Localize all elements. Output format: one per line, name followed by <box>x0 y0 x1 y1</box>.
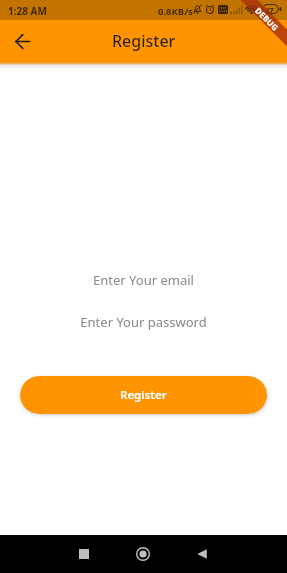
staticText: Register <box>112 30 176 52</box>
staticText: 47 <box>265 5 274 15</box>
staticText: 0.8KB/s <box>158 5 193 18</box>
button[interactable]: Register <box>20 376 267 414</box>
staticText: Register <box>120 387 167 403</box>
staticText: DEBUG <box>253 5 281 33</box>
staticText: Enter Your email <box>93 271 194 289</box>
staticText: Enter Your password <box>80 313 207 331</box>
button[interactable]: Recents <box>54 535 114 573</box>
button[interactable]: Home <box>113 535 173 573</box>
button[interactable]: Back <box>172 535 232 573</box>
staticText: 1:28 AM <box>8 4 47 18</box>
button[interactable]: Back <box>8 27 36 55</box>
